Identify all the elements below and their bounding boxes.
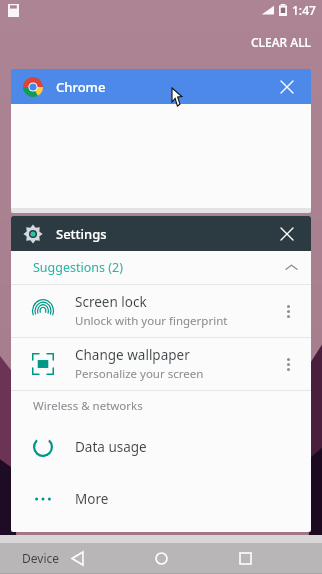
staticText: Settings [56,225,107,243]
button[interactable]: More [11,473,311,525]
button[interactable]: Close Chrome [275,75,299,99]
button[interactable]: Recent apps [228,543,262,573]
button[interactable]: CLEAR ALL [245,30,317,54]
button[interactable]: Chrome [11,69,311,104]
staticText: Data usage [75,438,147,456]
button[interactable]: Data usage [11,421,311,473]
button[interactable]: Close Settings [275,222,299,246]
button[interactable]: Settings [11,216,311,251]
staticText: 1:47 [292,2,316,18]
staticText: More [75,490,109,508]
button[interactable]: Suggestions (2) [11,251,311,284]
staticText: Screen lock [75,293,147,311]
staticText: Suggestions (2) [33,259,123,276]
staticText: Wireless & networks [33,398,143,414]
button[interactable]: More options for Screen lock [275,298,301,324]
staticText: Personalize your screen [75,366,204,382]
button[interactable]: More options for Change wallpaper [275,351,301,377]
staticText: Unlock with your fingerprint [75,313,228,329]
button[interactable]: Back [60,543,94,573]
staticText: CLEAR ALL [251,34,311,50]
staticText: Device [22,550,60,566]
staticText: Chrome [56,78,106,96]
button[interactable]: Change wallpaper [11,338,311,390]
button[interactable]: Screen lock [11,285,311,337]
button[interactable]: Home [144,543,178,573]
staticText: Change wallpaper [75,346,190,364]
